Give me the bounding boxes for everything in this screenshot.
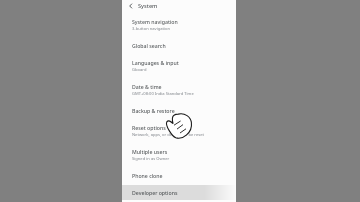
staticText: Multiple users — [132, 148, 168, 155]
staticText: Network, apps, or device can be reset — [132, 132, 204, 138]
staticText: Gboard — [132, 67, 147, 73]
button[interactable]: Developer options — [122, 185, 236, 200]
button[interactable]: Multiple users — [122, 144, 236, 166]
staticText: GMT+08:00 India Standard Time — [132, 91, 194, 97]
button[interactable]: System navigation — [122, 14, 236, 36]
button[interactable]: Reset options — [122, 120, 236, 142]
staticText: Backup & restore — [132, 107, 175, 114]
staticText: Languages & input — [132, 59, 179, 66]
staticText: Global search — [132, 42, 166, 49]
staticText: System navigation — [132, 18, 178, 25]
staticText: System — [138, 2, 158, 10]
staticText: Signed in as Owner — [132, 156, 170, 162]
staticText: Date & time — [132, 83, 162, 90]
button[interactable]: Date & time — [122, 79, 236, 101]
staticText: Reset options — [132, 124, 166, 131]
button[interactable]: Global search — [122, 38, 236, 53]
staticText: Developer options — [132, 189, 178, 196]
button[interactable]: Back — [125, 0, 137, 11]
staticText: Phone clone — [132, 172, 163, 179]
staticText: 3-button navigation — [132, 26, 171, 32]
button[interactable]: Languages & input — [122, 55, 236, 77]
button[interactable]: Phone clone — [122, 168, 236, 183]
button[interactable]: Backup & restore — [122, 103, 236, 118]
